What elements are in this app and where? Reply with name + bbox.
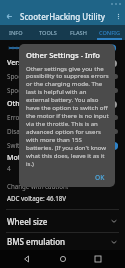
button[interactable]: TOOLS [32,25,63,40]
button[interactable]: Back [2,9,16,23]
staticText: Version spoofing [7,58,108,68]
button[interactable]: Back [19,251,35,267]
button[interactable]: BMS emulation [0,233,125,250]
staticText: Wheel size [7,216,110,227]
button[interactable]: Error suppression [0,110,125,124]
staticText: Spoof BLE version [7,72,104,81]
staticText: Change with caution! [7,182,69,190]
button[interactable]: Disable charging mode [0,124,125,138]
button[interactable]: Switch off motor [0,138,125,152]
button[interactable]: Home [55,251,71,267]
staticText: Switch off motor [7,141,104,150]
button[interactable]: More options [112,10,124,22]
button[interactable]: Version spoofing info [108,58,118,68]
button[interactable]: INFO [0,25,32,40]
staticText: Other settings give you the possibility … [26,64,109,168]
staticText: FLASH [70,29,87,37]
staticText: Motor start speed [7,153,68,163]
staticText: CONFIG [99,29,121,37]
staticText: Other Settings - Info [26,50,100,60]
button[interactable]: Other settings info [108,99,118,109]
staticText: Disable charging mode [7,127,104,136]
staticText: Other settings [7,99,108,109]
staticText: OK [95,173,105,182]
staticText: ADC voltage: 46.18V [7,194,67,202]
button[interactable]: CONFIG [94,25,125,40]
button[interactable]: Wheel size [0,210,125,232]
staticText: 4 [7,164,11,173]
button[interactable]: Spoof BLE version [0,69,125,83]
staticText: Spoof DRV version [7,86,104,95]
button[interactable]: FLASH [63,25,94,40]
staticText: TOOLS [39,29,57,37]
staticText: ScooterHacking Utility [20,11,106,22]
button[interactable]: Recent apps [90,251,106,267]
staticText: BMS emulation [7,236,110,247]
staticText: Error suppression [7,113,104,122]
staticText: INFO [9,29,23,37]
button[interactable]: OK [91,171,109,184]
button[interactable]: Spoof DRV version [0,83,125,97]
